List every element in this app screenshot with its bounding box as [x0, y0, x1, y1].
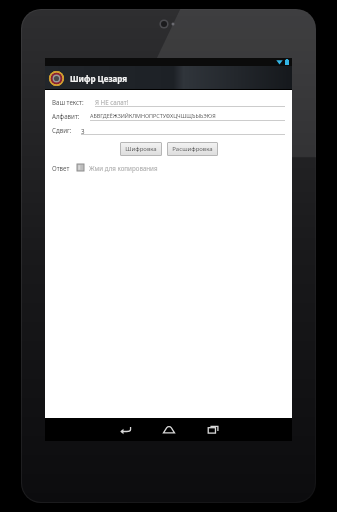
- staticText: Я НЕ салат!: [95, 98, 129, 106]
- staticText: 3: [81, 127, 85, 135]
- staticText: Жми для копирования: [89, 164, 158, 172]
- button[interactable]: Жми для копирования: [76, 163, 85, 172]
- button[interactable]: Recent apps: [196, 418, 230, 441]
- staticText: АБВГДЕЁЖЗИЙКЛМНОПРСТУФХЦЧШЩЪЫЬЭЮЯ: [90, 112, 216, 119]
- button[interactable]: Home: [152, 418, 186, 441]
- button[interactable]: АБВГДЕЁЖЗИЙКЛМНОПРСТУФХЦЧШЩЪЫЬЭЮЯ: [90, 111, 285, 121]
- button[interactable]: Back: [108, 418, 142, 441]
- staticText: Ответ: [52, 164, 70, 172]
- staticText: Сдвиг:: [52, 126, 72, 134]
- staticText: Шифр Цезаря: [70, 73, 128, 84]
- button[interactable]: Расшифровка: [167, 142, 218, 156]
- staticText: Ваш текст:: [52, 98, 84, 106]
- button[interactable]: 3: [81, 125, 285, 135]
- staticText: Алфавит:: [52, 112, 80, 120]
- staticText: Шифровка: [125, 145, 157, 153]
- button[interactable]: Шифровка: [120, 142, 162, 156]
- button[interactable]: Я НЕ салат!: [95, 97, 285, 107]
- staticText: Расшифровка: [172, 145, 213, 153]
